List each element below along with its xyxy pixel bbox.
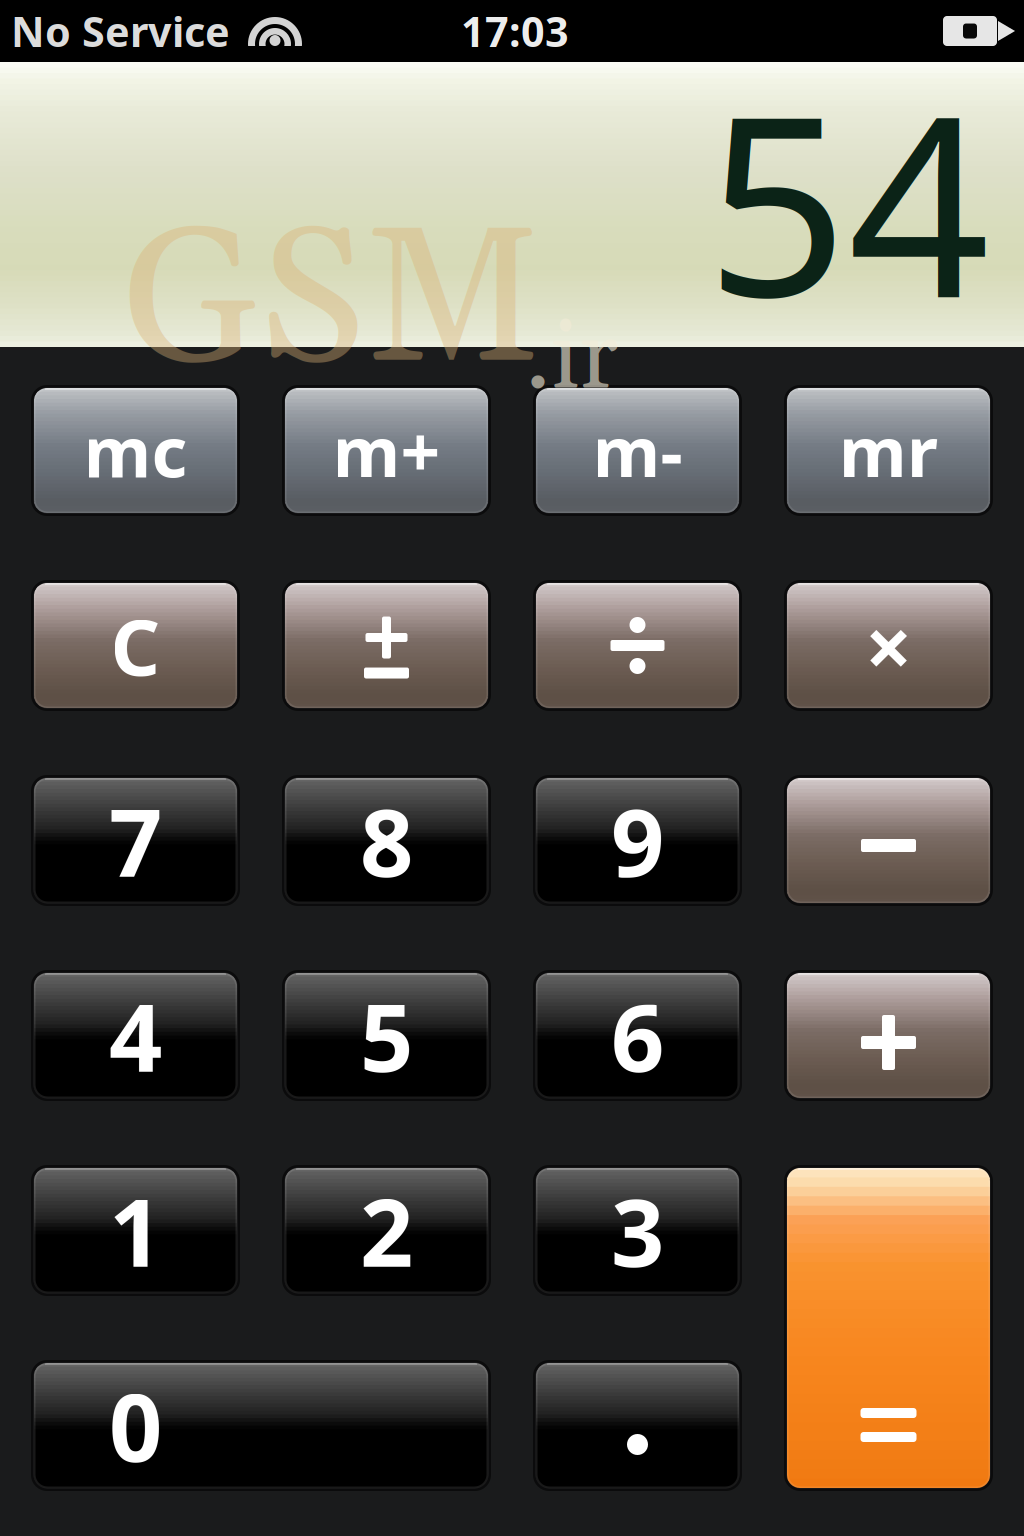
button[interactable]: 5: [282, 970, 491, 1101]
staticText: 3: [611, 1168, 664, 1292]
staticText: 2: [360, 1168, 413, 1292]
staticText: 8: [360, 778, 413, 902]
button[interactable]: 4: [31, 970, 240, 1101]
button[interactable]: C: [31, 580, 240, 711]
staticText: ×: [865, 591, 912, 700]
staticText: m+: [332, 404, 440, 497]
staticText: 0: [109, 1363, 162, 1487]
button[interactable]: m+: [282, 385, 491, 516]
staticText: .ir: [525, 298, 618, 420]
button[interactable]: Divide: [533, 580, 742, 711]
button[interactable]: 9: [533, 775, 742, 906]
staticText: 54: [706, 36, 990, 365]
staticText: No Service: [11, 4, 230, 58]
button[interactable]: 8: [282, 775, 491, 906]
button[interactable]: Equals: [784, 1165, 993, 1491]
staticText: 4: [109, 973, 162, 1097]
staticText: mc: [83, 404, 187, 497]
button[interactable]: Decimal point: [533, 1360, 742, 1491]
button[interactable]: 2: [282, 1165, 491, 1296]
staticText: 6: [611, 973, 664, 1097]
button[interactable]: Plus: [784, 970, 993, 1101]
staticText: 7: [109, 778, 162, 902]
staticText: 1: [109, 1168, 162, 1292]
staticText: 9: [611, 778, 664, 902]
button[interactable]: Plus minus: [282, 580, 491, 711]
button[interactable]: ×: [784, 580, 993, 711]
button[interactable]: 6: [533, 970, 742, 1101]
staticText: 17:03: [461, 4, 569, 58]
button[interactable]: Minus: [784, 775, 993, 906]
button[interactable]: mr: [784, 385, 993, 516]
button[interactable]: 1: [31, 1165, 240, 1296]
button[interactable]: 3: [533, 1165, 742, 1296]
button[interactable]: m-: [533, 385, 742, 516]
staticText: C: [110, 594, 160, 697]
button[interactable]: 7: [31, 775, 240, 906]
button[interactable]: 0: [31, 1360, 491, 1491]
staticText: mr: [839, 404, 938, 497]
staticText: GSM: [122, 184, 541, 424]
button[interactable]: mc: [31, 385, 240, 516]
staticText: 5: [360, 973, 413, 1097]
staticText: m-: [592, 404, 682, 497]
